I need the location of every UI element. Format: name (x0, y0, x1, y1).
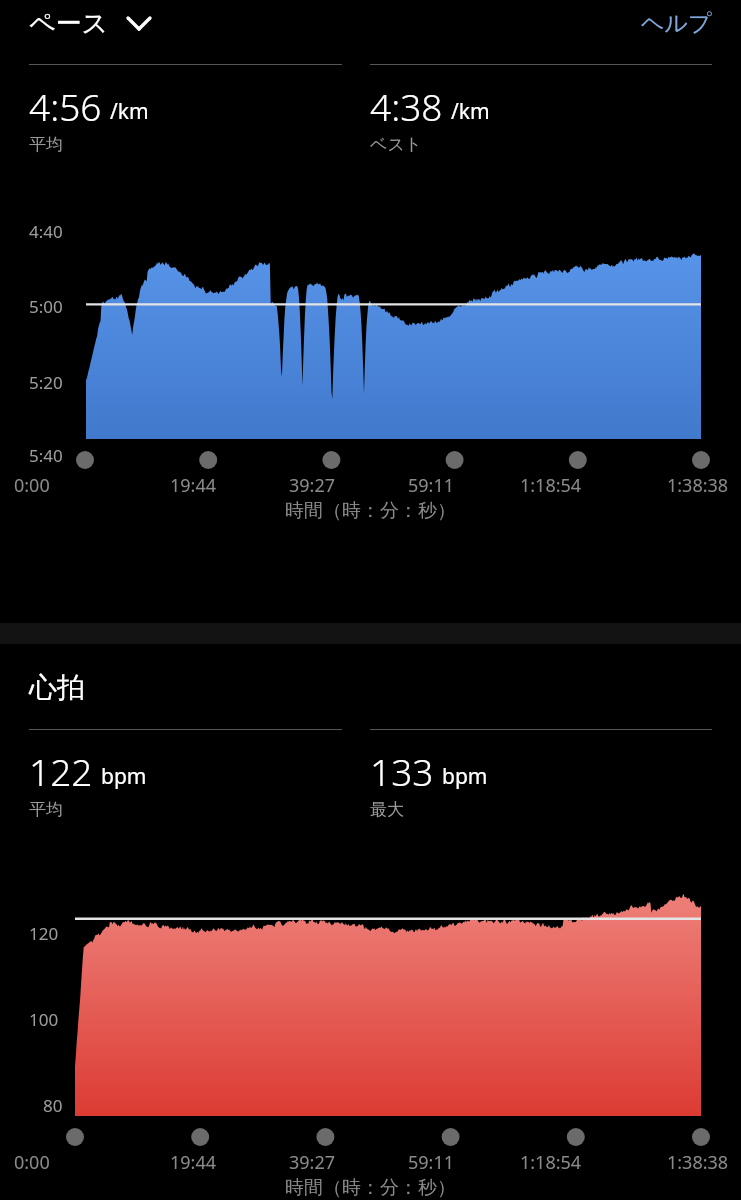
staticText: 59:11 (408, 1150, 455, 1174)
staticText: ヘルプ (641, 9, 712, 38)
staticText: 1:18:54 (520, 1150, 582, 1174)
staticText: 5:20 (29, 371, 63, 394)
staticText: 4:56 (29, 81, 102, 131)
staticText: 39:27 (289, 1150, 336, 1174)
staticText: 4:40 (29, 220, 63, 243)
staticText: 122 (29, 746, 93, 796)
staticText: 19:44 (170, 473, 217, 497)
staticText: 80 (43, 1094, 63, 1117)
button[interactable]: ペース (29, 7, 151, 40)
staticText: 1:38:38 (667, 1150, 729, 1174)
staticText: 0:00 (14, 473, 50, 497)
staticText: /km (451, 97, 490, 126)
other: Change metric (127, 12, 151, 36)
staticText: 時間（時：分：秒） (285, 1176, 456, 1200)
staticText: 平均 (29, 799, 63, 820)
staticText: 0:00 (14, 1150, 50, 1174)
staticText: ペース (29, 7, 109, 40)
staticText: 59:11 (408, 473, 455, 497)
staticText: 心拍 (29, 670, 85, 705)
staticText: 120 (29, 922, 59, 945)
staticText: 4:38 (370, 81, 443, 131)
staticText: /km (110, 97, 149, 126)
staticText: 時間（時：分：秒） (285, 499, 456, 523)
staticText: bpm (442, 762, 488, 791)
staticText: 39:27 (289, 473, 336, 497)
staticText: 19:44 (170, 1150, 217, 1174)
staticText: 1:38:38 (667, 473, 729, 497)
staticText: 5:00 (29, 295, 63, 318)
staticText: bpm (101, 762, 147, 791)
staticText: 100 (29, 1008, 59, 1031)
staticText: 133 (370, 746, 434, 796)
staticText: 1:18:54 (520, 473, 582, 497)
staticText: 平均 (29, 134, 63, 155)
staticText: 5:40 (29, 444, 63, 467)
button[interactable]: ヘルプ (641, 9, 712, 38)
staticText: 最大 (370, 799, 404, 820)
staticText: ベスト (370, 134, 423, 155)
